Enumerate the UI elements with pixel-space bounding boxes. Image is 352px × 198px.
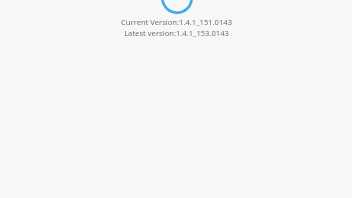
staticText: Latest version:1.4.1_153.0143 <box>124 28 229 38</box>
staticText: Current Version:1.4.1_151.0143 <box>121 17 232 27</box>
